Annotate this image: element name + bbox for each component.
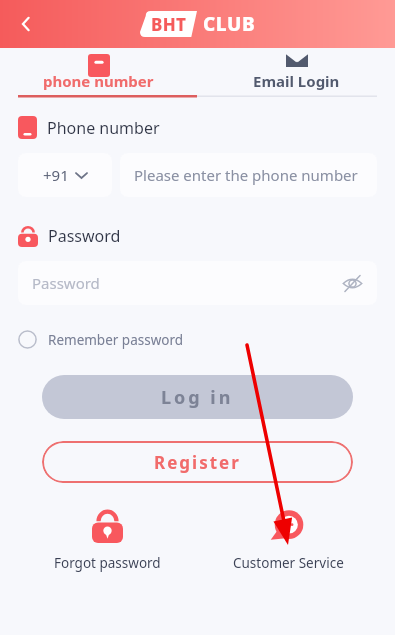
staticText: Password: [48, 225, 121, 247]
staticText: Register: [154, 451, 241, 474]
button[interactable]: Log in: [42, 375, 353, 419]
button[interactable]: Register: [42, 441, 353, 483]
button[interactable]: Customer Service: [213, 509, 363, 572]
staticText: Please enter the phone number: [134, 165, 358, 185]
staticText: Customer Service: [233, 554, 344, 572]
staticText: Remember password: [48, 331, 184, 349]
staticText: Password: [32, 273, 100, 293]
button[interactable]: Please enter the phone number: [120, 153, 377, 197]
button[interactable]: phone number: [0, 48, 197, 98]
button[interactable]: Email Login: [197, 48, 395, 98]
button[interactable]: Toggle password visibility: [335, 266, 369, 300]
button[interactable]: Forgot password: [32, 509, 182, 572]
button[interactable]: Remember password: [18, 330, 184, 349]
button[interactable]: Back: [6, 4, 46, 44]
button[interactable]: Password: [18, 261, 377, 305]
staticText: phone number: [43, 71, 154, 91]
staticText: Email Login: [253, 71, 340, 91]
staticText: Forgot password: [54, 554, 161, 572]
button[interactable]: +91: [18, 153, 112, 197]
staticText: Phone number: [47, 117, 160, 139]
staticText: CLUB: [203, 11, 256, 37]
staticText: +91: [43, 165, 69, 185]
staticText: Log in: [161, 385, 234, 410]
staticText: BHT: [151, 13, 187, 36]
